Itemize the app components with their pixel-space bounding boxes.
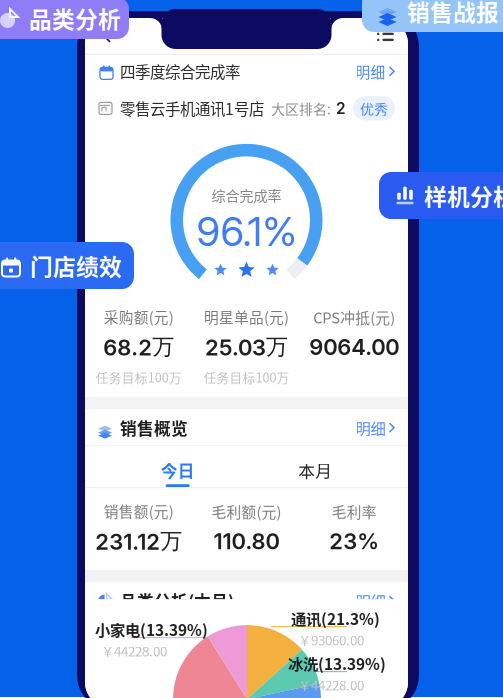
staticText: CPS冲抵(元)	[313, 306, 395, 328]
button[interactable]: Back	[85, 17, 127, 51]
button[interactable]: Menu	[363, 17, 408, 51]
button[interactable]: 本月	[270, 447, 360, 487]
staticText: 黑电(12.47%)	[288, 697, 386, 698]
staticText: 空调(12.47%)	[95, 697, 193, 698]
staticText: 销售概览	[120, 416, 188, 440]
staticText: 冰洗(13.39%)	[288, 652, 386, 674]
staticText: 四季度综合完成率	[120, 60, 240, 83]
staticText: 采购额(元)	[104, 306, 174, 327]
staticText: 零售云手机通讯1号店	[120, 97, 264, 120]
staticText: 毛利额(元)	[211, 501, 281, 522]
button[interactable]: 销售战报	[362, 0, 503, 32]
staticText: 68.2万	[103, 333, 174, 361]
staticText: 今日	[161, 458, 195, 482]
staticText: 96.1%	[196, 207, 296, 255]
staticText: 2	[336, 99, 346, 118]
button[interactable]: 今日	[133, 447, 223, 487]
staticText: 大区排名:	[271, 98, 331, 118]
staticText: 综合完成率	[211, 185, 281, 205]
staticText: 231.12万	[95, 527, 182, 555]
staticText: 毛利率	[332, 501, 377, 522]
staticText: 本月	[298, 458, 332, 482]
staticText: 110.80	[213, 528, 279, 555]
staticText: 23%	[329, 528, 379, 555]
button[interactable]: 品类分析(本月)	[85, 582, 408, 619]
staticText: ￥44228.00	[298, 675, 364, 694]
button[interactable]: 四季度综合完成率	[85, 55, 408, 88]
staticText: 小家电(13.39%)	[95, 618, 208, 640]
staticText: 优秀	[360, 98, 388, 118]
staticText: ￥93060.00	[298, 630, 364, 649]
staticText: 任务目标100万	[203, 368, 289, 386]
staticText: 25.03万	[205, 333, 288, 361]
staticText: 明星单品(元)	[204, 306, 289, 327]
staticText: 通讯(21.3%)	[291, 607, 380, 629]
staticText: 9064.00	[309, 334, 399, 360]
staticText: 销售额(元)	[104, 500, 174, 521]
staticText: 明细	[355, 417, 385, 439]
button[interactable]: 门店绩效	[0, 242, 134, 289]
button[interactable]: 样机分析	[379, 172, 503, 219]
button[interactable]: 销售概览	[85, 409, 408, 446]
staticText: 明细	[355, 589, 385, 612]
staticText: 销售战报	[407, 0, 499, 27]
staticText: 任务目标100万	[96, 368, 182, 386]
staticText: ￥44228.00	[101, 641, 167, 660]
staticText: 品类分析(本月)	[120, 589, 234, 613]
staticText: 品类分析	[29, 2, 121, 34]
staticText: 样机分析	[424, 179, 503, 212]
staticText: 明细	[355, 61, 385, 82]
button[interactable]: 品类分析	[0, 0, 129, 39]
staticText: 门店绩效	[30, 249, 122, 282]
